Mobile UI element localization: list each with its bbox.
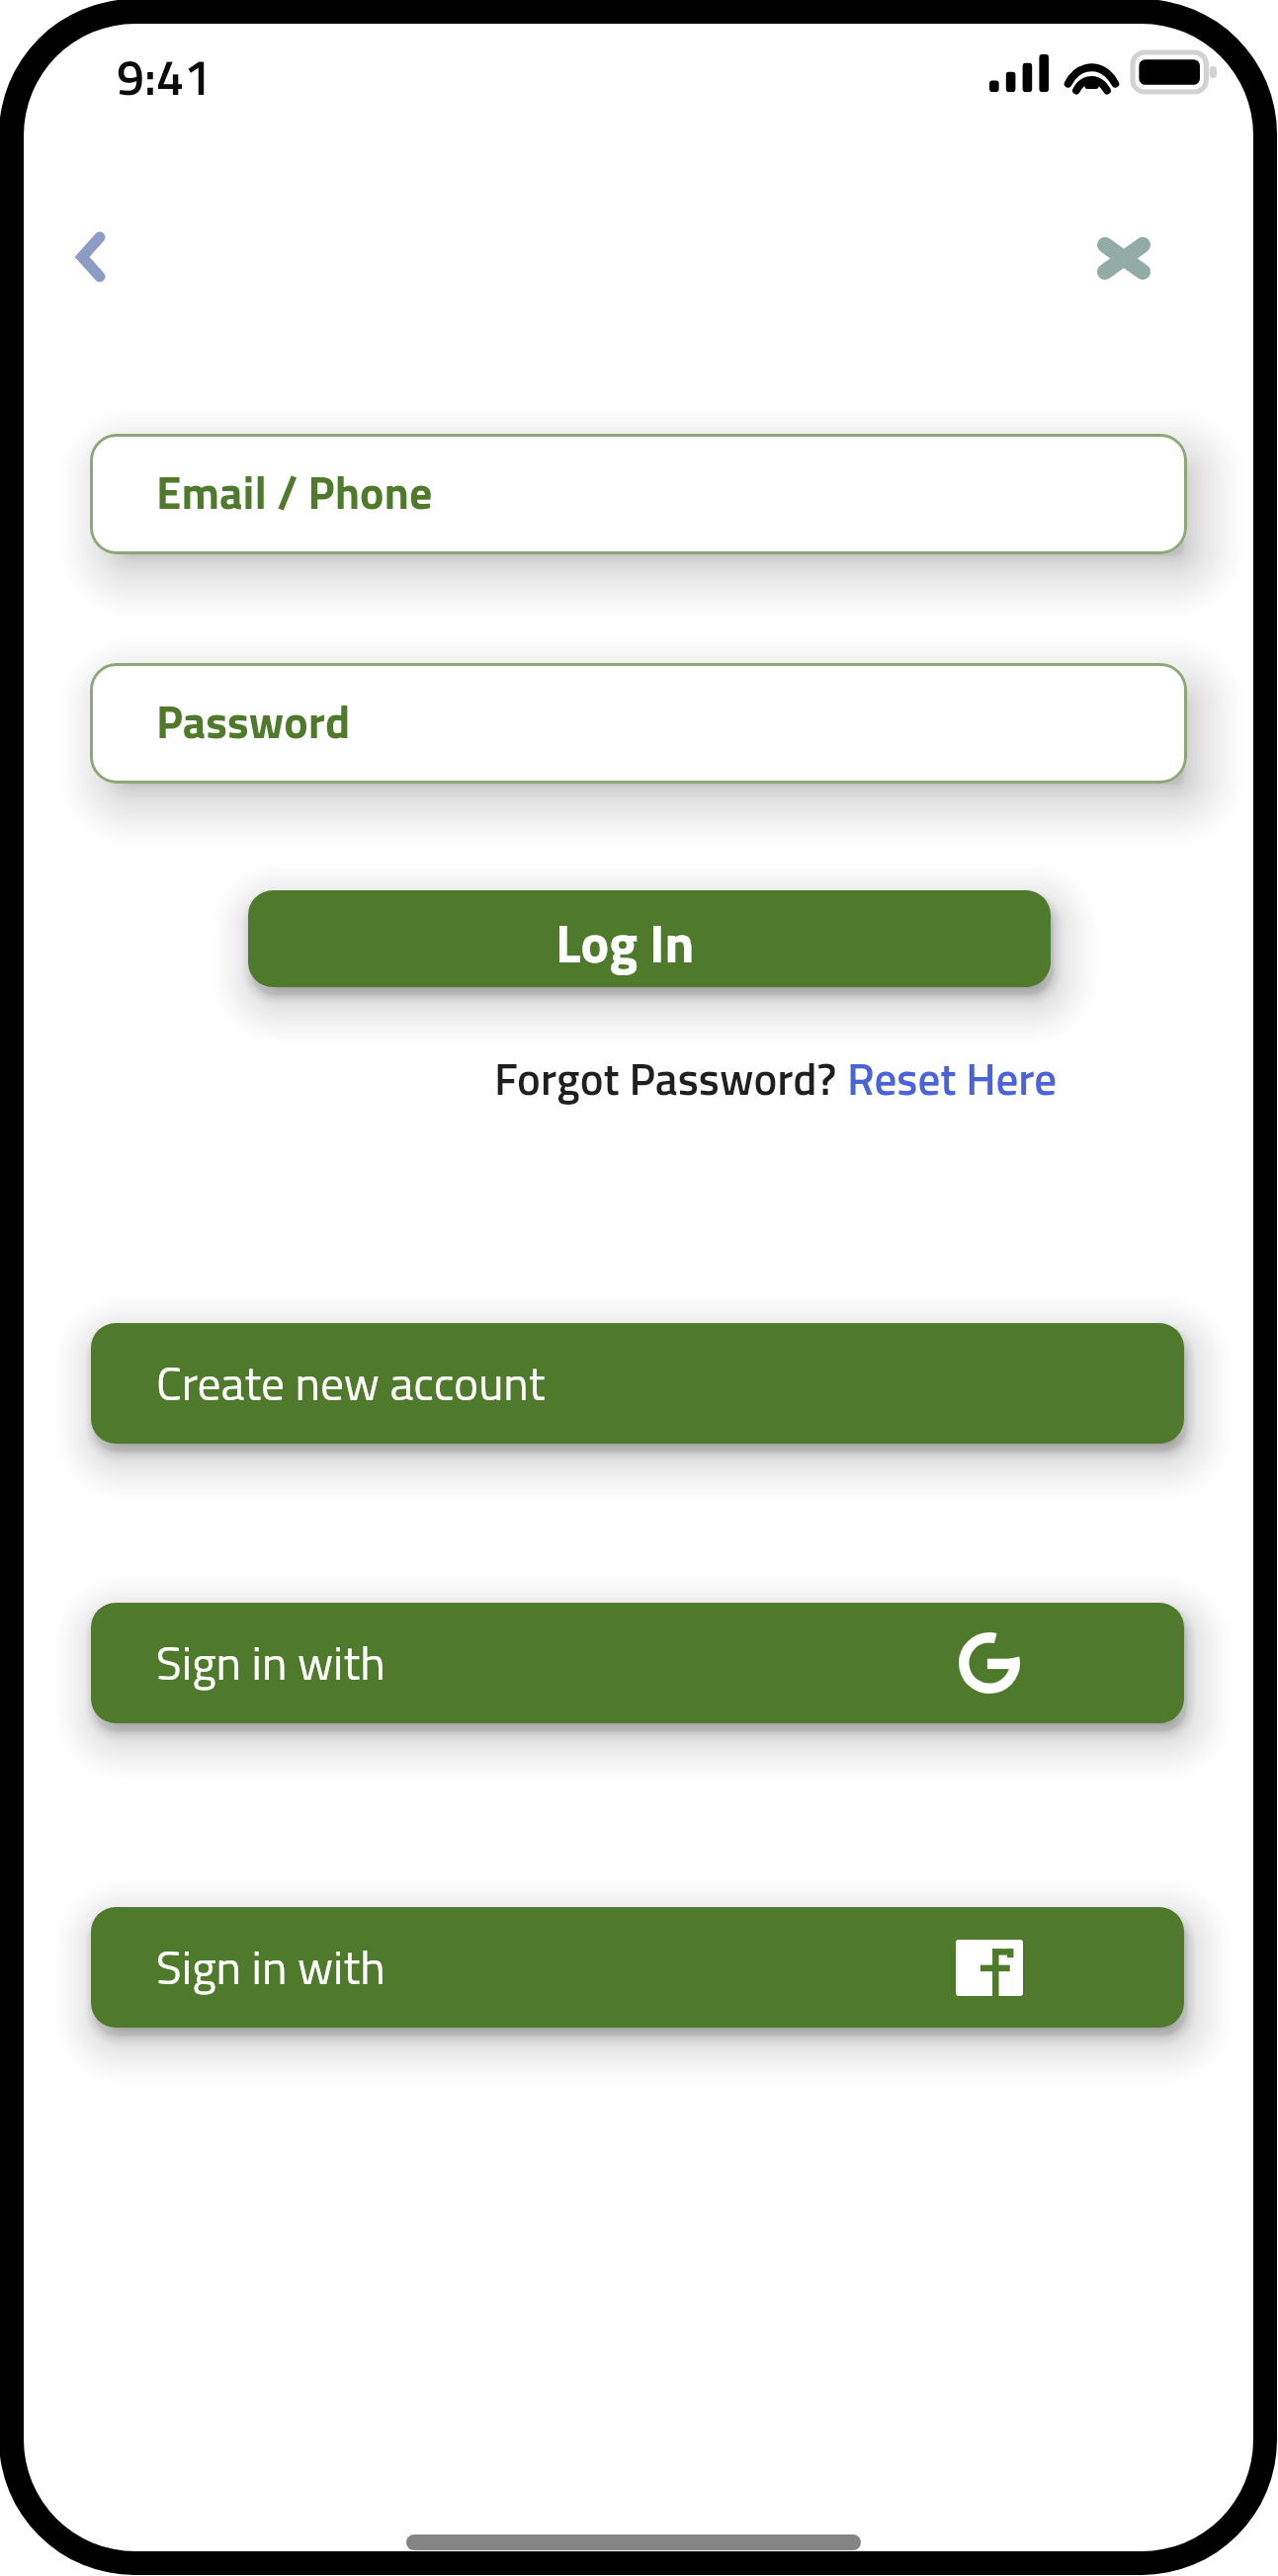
staticText: Reset Here (847, 1044, 1058, 1112)
button[interactable]: Sign in with (91, 1603, 1184, 1723)
staticText: Create new account (156, 1347, 546, 1418)
button[interactable]: Password (90, 663, 1187, 784)
button[interactable]: Sign in with (91, 1907, 1184, 2028)
button[interactable]: Email / Phone (90, 434, 1187, 554)
staticText: 9:41 (117, 39, 212, 114)
staticText: Forgot Password? (494, 1044, 847, 1112)
staticText: Password (156, 687, 351, 756)
button[interactable]: Reset Here (847, 1044, 1058, 1112)
staticText: Sign in with (156, 1626, 385, 1698)
button[interactable]: Create new account (91, 1323, 1184, 1444)
staticText: Log In (555, 902, 695, 983)
button[interactable]: Log In (248, 890, 1051, 987)
button[interactable]: Close (1069, 204, 1178, 312)
staticText: Email / Phone (156, 457, 433, 527)
staticText: Sign in with (156, 1931, 385, 2002)
button[interactable]: Back (37, 203, 145, 311)
